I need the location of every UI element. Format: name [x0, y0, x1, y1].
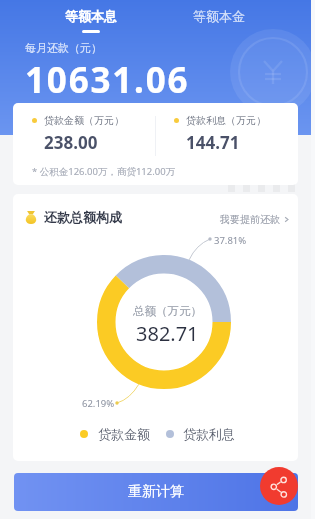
staticText: 144.71 — [186, 131, 240, 154]
staticText: 等额本息 — [65, 8, 117, 24]
staticText: 382.71 — [136, 320, 199, 347]
button[interactable]: 重新计算 — [14, 473, 298, 511]
staticText: 我要提前还款 — [220, 213, 280, 226]
staticText: 等额本金 — [193, 8, 245, 24]
staticText: 贷款利息（万元） — [186, 114, 266, 127]
staticText: 贷款利息 — [183, 426, 235, 442]
staticText: * 公积金126.00万，商贷112.00万 — [32, 165, 176, 178]
staticText: 10631.06 — [25, 56, 190, 104]
button[interactable]: 等额本息 — [55, 8, 127, 33]
button[interactable]: 等额本金 — [183, 8, 255, 30]
staticText: 贷款金额（万元） — [44, 114, 124, 127]
staticText: 还款总额构成 — [44, 209, 122, 225]
staticText: 62.19% — [82, 397, 115, 410]
button[interactable]: Share — [260, 467, 298, 505]
button[interactable]: 我要提前还款 — [220, 213, 290, 226]
staticText: 每月还款（元） — [25, 41, 102, 55]
staticText: 贷款金额 — [98, 426, 150, 442]
staticText: 37.81% — [214, 234, 247, 247]
staticText: 总额（万元） — [133, 304, 202, 318]
staticText: 238.00 — [44, 131, 98, 154]
staticText: 重新计算 — [128, 483, 184, 501]
